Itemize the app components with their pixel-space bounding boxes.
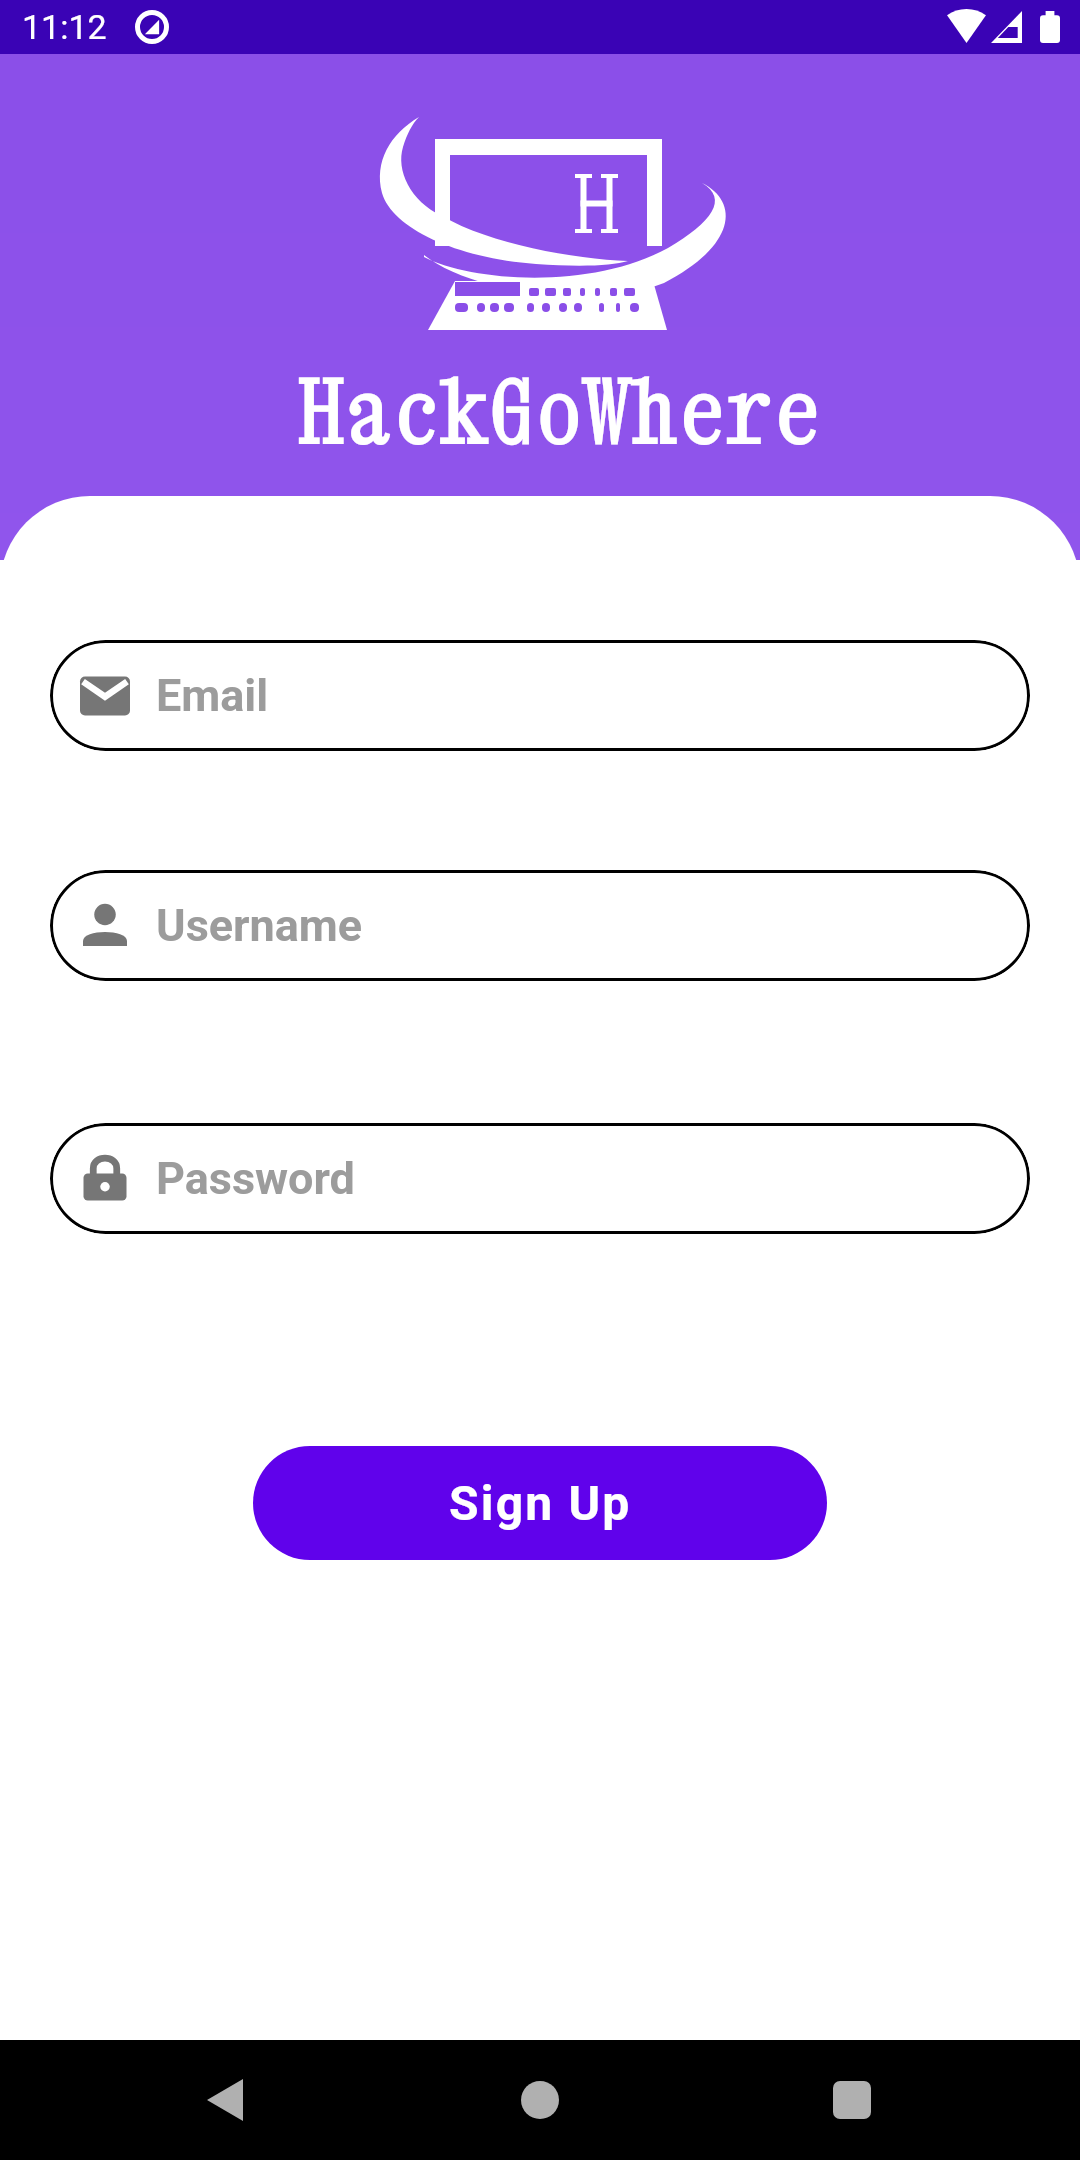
button[interactable]: Home bbox=[485, 2045, 595, 2155]
button[interactable]: Back bbox=[170, 2045, 280, 2155]
staticText: Password bbox=[156, 1152, 355, 1205]
button[interactable]: Username bbox=[50, 870, 1030, 981]
staticText: Email bbox=[156, 669, 269, 722]
button[interactable]: Recent apps bbox=[797, 2045, 907, 2155]
staticText: HackGoWhere bbox=[298, 361, 822, 463]
staticText: 11:12 bbox=[22, 7, 107, 47]
button[interactable]: Password bbox=[50, 1123, 1030, 1234]
staticText: Username bbox=[156, 899, 363, 952]
button[interactable]: Sign Up bbox=[253, 1446, 827, 1560]
button[interactable]: Email bbox=[50, 640, 1030, 751]
staticText: Sign Up bbox=[449, 1475, 632, 1531]
